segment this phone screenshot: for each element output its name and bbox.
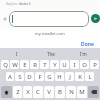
staticText: Z	[16, 88, 20, 96]
button[interactable]	[9, 11, 89, 27]
staticText: I	[73, 61, 76, 69]
staticText: U	[62, 61, 67, 69]
button[interactable]: N	[66, 86, 76, 98]
staticText: K	[78, 73, 82, 81]
staticText: R	[33, 61, 37, 69]
staticText: my.irwallet.com	[35, 31, 65, 36]
staticText: M	[79, 88, 85, 96]
button[interactable]: I	[0, 48, 34, 59]
button[interactable]: P	[90, 60, 99, 69]
button[interactable]: T	[40, 60, 49, 69]
button[interactable]: I'm	[67, 48, 100, 59]
staticText: Y	[53, 61, 57, 69]
staticText: G	[47, 73, 52, 81]
staticText: F	[38, 73, 42, 81]
button[interactable]: Done	[81, 41, 94, 48]
staticText: B	[58, 88, 62, 96]
button[interactable]: A	[6, 72, 14, 81]
button[interactable]: B	[55, 86, 65, 98]
staticText: L	[88, 73, 92, 81]
button[interactable]: V	[44, 86, 54, 98]
staticText: Done	[81, 41, 94, 48]
staticText: P	[93, 61, 97, 69]
button[interactable]: I	[70, 60, 79, 69]
staticText: J	[69, 73, 71, 81]
staticText: I	[16, 51, 18, 57]
button[interactable]: Z	[13, 86, 22, 98]
button[interactable]: G	[45, 72, 54, 81]
button[interactable]: D	[25, 72, 34, 81]
staticText: W	[12, 61, 18, 69]
button[interactable]: J	[65, 72, 74, 81]
button[interactable]: M	[77, 86, 87, 98]
staticText: The	[47, 51, 55, 57]
button[interactable]: L	[85, 72, 94, 81]
staticText: Q	[3, 61, 8, 69]
staticText: I'm	[80, 51, 87, 57]
staticText: E	[23, 61, 27, 69]
button[interactable]: R	[30, 60, 39, 69]
button[interactable]: The	[34, 48, 67, 59]
button[interactable]: Send	[91, 14, 100, 23]
staticText: C	[36, 88, 40, 96]
staticText: D	[27, 73, 32, 81]
staticText: V	[47, 88, 51, 96]
button[interactable]: U	[60, 60, 69, 69]
button[interactable]: K	[75, 72, 84, 81]
button[interactable]: Add attachment	[0, 9, 9, 28]
staticText: X	[26, 88, 30, 96]
button[interactable]: E	[20, 60, 29, 69]
button[interactable]: H	[55, 72, 64, 81]
button[interactable]: Backspace	[88, 86, 99, 98]
staticText: S	[18, 73, 22, 81]
button[interactable]: Y	[50, 60, 59, 69]
button[interactable]: S	[15, 72, 24, 81]
button[interactable]: C	[33, 86, 43, 98]
button[interactable]: F	[35, 72, 44, 81]
button[interactable]: O	[80, 60, 89, 69]
staticText: doctor 3	[19, 2, 31, 6]
staticText: Reply to:	[6, 2, 19, 6]
staticText: T	[43, 61, 47, 69]
button[interactable]: W	[10, 60, 19, 69]
staticText: A	[8, 73, 12, 81]
staticText: N	[69, 88, 74, 96]
button[interactable]: Q	[1, 60, 9, 69]
button[interactable]: X	[23, 86, 32, 98]
staticText: H	[57, 73, 62, 81]
staticText: O	[82, 61, 87, 69]
button[interactable]: Shift	[1, 86, 12, 98]
